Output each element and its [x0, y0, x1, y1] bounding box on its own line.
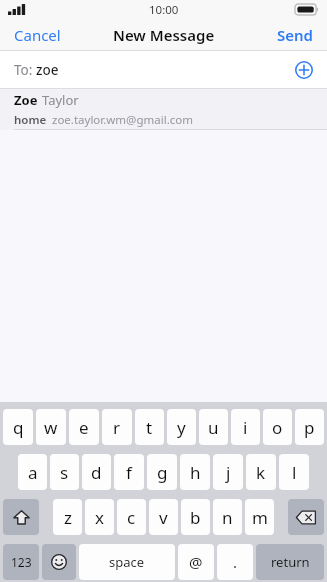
button[interactable]: u: [199, 409, 228, 445]
button[interactable]: 123: [3, 544, 39, 580]
button[interactable]: return: [256, 544, 324, 580]
staticText: home: [14, 112, 47, 128]
button[interactable]: n: [213, 499, 242, 535]
staticText: u: [208, 416, 219, 439]
button[interactable]: c: [117, 499, 146, 535]
button[interactable]: Shift: [3, 499, 39, 535]
staticText: e: [79, 416, 89, 439]
staticText: s: [60, 461, 69, 484]
button[interactable]: @: [178, 544, 214, 580]
staticText: c: [127, 506, 136, 529]
staticText: b: [190, 506, 201, 529]
button[interactable]: .: [217, 544, 253, 580]
staticText: p: [304, 416, 315, 439]
staticText: Zoe: [14, 91, 38, 109]
staticText: k: [256, 461, 266, 484]
button[interactable]: y: [167, 409, 196, 445]
button[interactable]: z: [53, 499, 82, 535]
staticText: z: [64, 506, 72, 529]
button[interactable]: Cancel: [0, 19, 75, 51]
staticText: Taylor: [42, 91, 79, 109]
staticText: zoe: [36, 61, 59, 79]
staticText: w: [44, 416, 58, 439]
button[interactable]: j: [213, 454, 243, 490]
staticText: a: [28, 461, 38, 484]
staticText: v: [159, 506, 168, 529]
staticText: m: [252, 506, 268, 529]
button[interactable]: x: [85, 499, 114, 535]
staticText: t: [146, 416, 153, 439]
staticText: h: [190, 461, 201, 484]
staticText: 123: [11, 554, 32, 570]
button[interactable]: e: [69, 409, 99, 445]
button[interactable]: g: [147, 454, 177, 490]
staticText: l: [292, 461, 297, 484]
button[interactable]: Send: [263, 19, 327, 51]
staticText: n: [222, 506, 233, 529]
staticText: @: [189, 552, 203, 572]
staticText: g: [157, 461, 168, 484]
button[interactable]: d: [82, 454, 111, 490]
button[interactable]: o: [263, 409, 292, 445]
staticText: d: [91, 461, 102, 484]
button[interactable]: q: [3, 409, 33, 445]
button[interactable]: l: [279, 454, 309, 490]
button[interactable]: Zoe: [0, 89, 327, 130]
button[interactable]: Add contact: [291, 57, 317, 83]
staticText: Send: [277, 25, 313, 45]
staticText: r: [113, 416, 121, 439]
button[interactable]: m: [245, 499, 274, 535]
button[interactable]: Delete: [288, 499, 324, 535]
staticText: space: [109, 553, 145, 571]
staticText: return: [271, 553, 310, 571]
staticText: To:: [14, 61, 36, 79]
button[interactable]: w: [36, 409, 66, 445]
button[interactable]: f: [114, 454, 144, 490]
staticText: y: [177, 416, 186, 439]
button[interactable]: v: [149, 499, 178, 535]
staticText: i: [243, 416, 248, 439]
staticText: Cancel: [14, 25, 61, 45]
staticText: .: [233, 552, 238, 572]
button[interactable]: r: [102, 409, 132, 445]
button[interactable]: k: [246, 454, 276, 490]
button[interactable]: i: [231, 409, 260, 445]
button[interactable]: a: [18, 454, 47, 490]
staticText: q: [13, 416, 24, 439]
staticText: New Message: [113, 25, 215, 45]
button[interactable]: h: [180, 454, 210, 490]
button[interactable]: t: [135, 409, 164, 445]
staticText: o: [272, 416, 283, 439]
staticText: 10:00: [149, 2, 179, 18]
button[interactable]: Emoji: [42, 544, 76, 580]
staticText: f: [126, 461, 132, 484]
button[interactable]: space: [79, 544, 175, 580]
button[interactable]: s: [50, 454, 79, 490]
staticText: zoe.taylor.wm@gmail.com: [52, 112, 193, 128]
button[interactable]: To:: [0, 51, 327, 89]
staticText: x: [95, 506, 104, 529]
staticText: j: [226, 461, 231, 484]
button[interactable]: b: [181, 499, 210, 535]
button[interactable]: p: [295, 409, 324, 445]
